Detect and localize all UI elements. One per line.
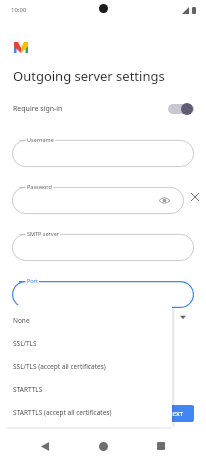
button[interactable]: Expand security type (176, 310, 190, 324)
button[interactable]: Username (12, 133, 194, 167)
button[interactable]: Recent apps (148, 433, 174, 459)
staticText: NEXT (168, 410, 184, 418)
button[interactable]: Require sign-in toggle (168, 103, 194, 115)
button[interactable]: Require sign-in (0, 99, 206, 119)
staticText: Outgoing server settings (13, 67, 165, 85)
staticText: STARTTLS (accept all certificates) (13, 408, 112, 417)
button[interactable]: Password (12, 180, 184, 214)
staticText: Port (27, 277, 38, 284)
button[interactable]: Show password (158, 194, 170, 206)
button[interactable]: Home (90, 433, 116, 459)
staticText: None (13, 316, 30, 325)
staticText: SMTP server (27, 230, 59, 237)
staticText: SSL/TLS (accept all certificates) (13, 362, 106, 371)
button[interactable]: None (7, 309, 172, 332)
staticText: Password (27, 183, 52, 190)
staticText: STARTTLS (13, 385, 43, 394)
button[interactable]: STARTTLS (7, 378, 172, 401)
staticText: Username (27, 136, 54, 143)
button[interactable]: Back (32, 433, 58, 459)
staticText: SSL/TLS (13, 339, 37, 348)
button[interactable]: SMTP server (12, 227, 194, 261)
button[interactable]: SSL/TLS (accept all certificates) (7, 355, 172, 378)
button[interactable]: SSL/TLS (7, 332, 172, 355)
staticText: Require sign-in (13, 104, 63, 114)
button[interactable]: STARTTLS (accept all certificates) (7, 401, 172, 424)
button[interactable]: Port (12, 274, 194, 308)
button[interactable]: Clear password (184, 186, 206, 208)
staticText: Security type (13, 318, 47, 325)
button[interactable]: NEXT (158, 405, 194, 422)
staticText: 10:00 (11, 6, 27, 14)
